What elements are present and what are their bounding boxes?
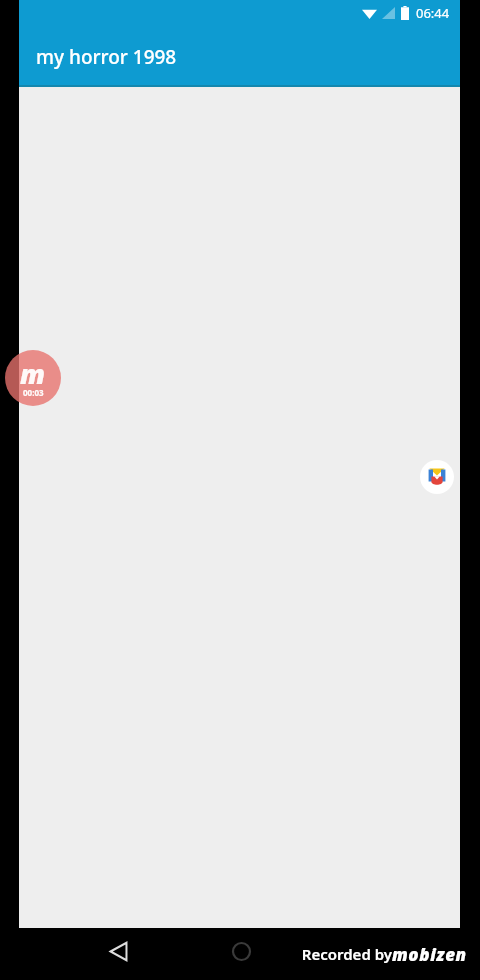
staticText: Recorded by <box>297 944 392 964</box>
staticText: my horror 1998 <box>36 44 177 70</box>
button[interactable]: Home <box>218 928 264 974</box>
staticText: 00:03 <box>23 387 44 398</box>
button[interactable]: Mobizen recorder <box>5 350 61 406</box>
button[interactable]: App shortcut <box>420 460 454 494</box>
button[interactable]: my horror 1998 <box>19 26 460 87</box>
button[interactable]: Back <box>95 928 141 974</box>
staticText: 06:44 <box>416 4 450 22</box>
staticText: mobizen <box>392 943 467 966</box>
staticText: m <box>20 355 46 392</box>
